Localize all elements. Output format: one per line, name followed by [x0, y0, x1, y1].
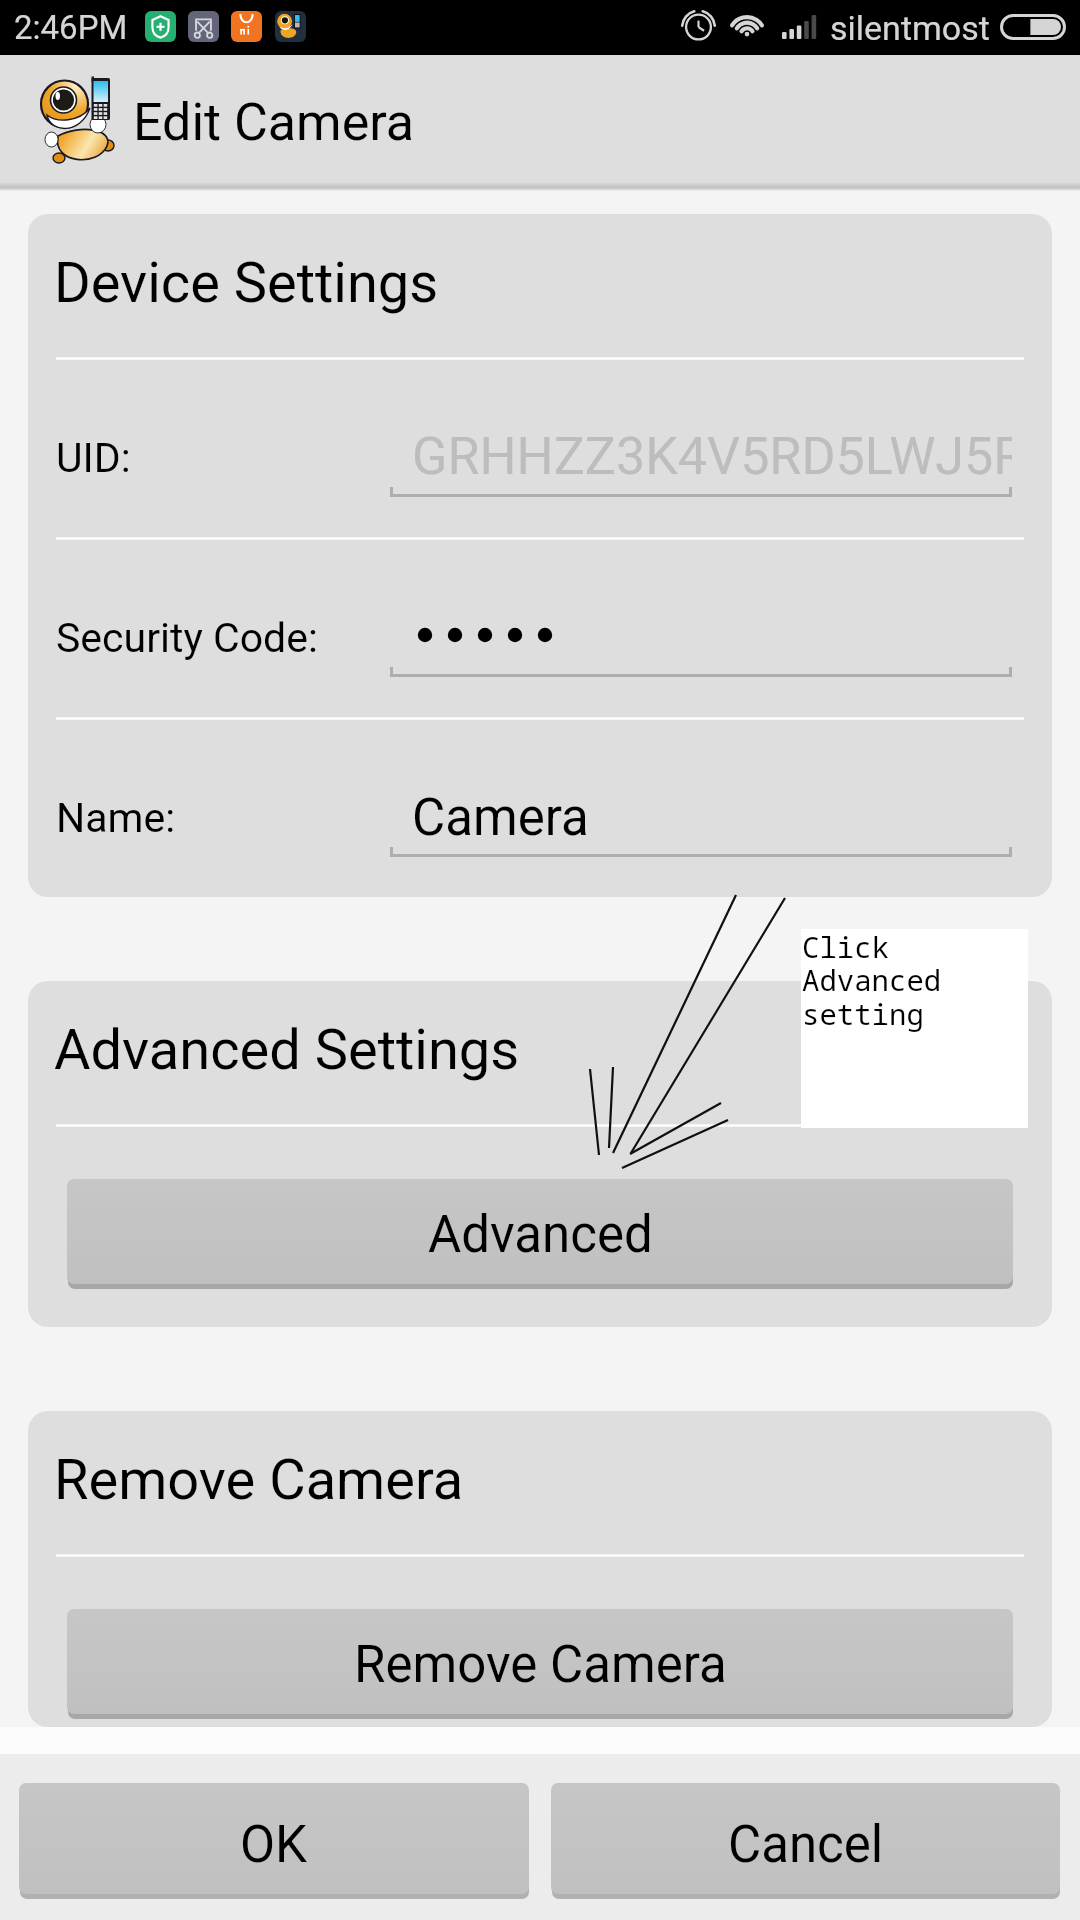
staticText: OK: [240, 1815, 308, 1875]
staticText: Device Settings: [54, 250, 439, 316]
staticText: Advanced Settings: [54, 1017, 520, 1083]
staticText: Remove Camera: [354, 1635, 727, 1695]
staticText: Camera: [412, 788, 589, 848]
button[interactable]: Advanced: [67, 1179, 1013, 1284]
button[interactable]: Name:: [28, 720, 1052, 897]
button[interactable]: Remove Camera: [67, 1609, 1013, 1714]
staticText: Security Code:: [56, 614, 318, 662]
staticText: Advanced: [428, 1205, 653, 1265]
other: Security: [145, 11, 176, 42]
staticText: Name:: [56, 794, 176, 842]
staticText: GRHHZZ3K4V5RD5LWJ5R: [412, 426, 1012, 487]
button[interactable]: Security Code:: [28, 540, 1052, 717]
staticText: UID:: [56, 434, 131, 482]
button[interactable]: OK: [19, 1783, 529, 1894]
staticText: Cancel: [728, 1815, 884, 1875]
staticText: 2:46PM: [14, 8, 128, 47]
other: Alarm: [683, 10, 714, 40]
staticText: Remove Camera: [54, 1447, 464, 1513]
staticText: silentmost: [830, 8, 990, 48]
other: Screenshot: [188, 11, 219, 42]
staticText: Click Advanced setting: [802, 927, 942, 1034]
button[interactable]: UID:: [28, 360, 1052, 537]
other: Mi Store: [231, 11, 262, 42]
other: Camera app: [275, 11, 306, 42]
staticText: Edit Camera: [133, 92, 415, 153]
button[interactable]: Cancel: [551, 1783, 1060, 1894]
other: Signal strength: [780, 13, 815, 39]
other: Wi-Fi: [729, 11, 765, 40]
other: Battery: [1000, 14, 1066, 40]
